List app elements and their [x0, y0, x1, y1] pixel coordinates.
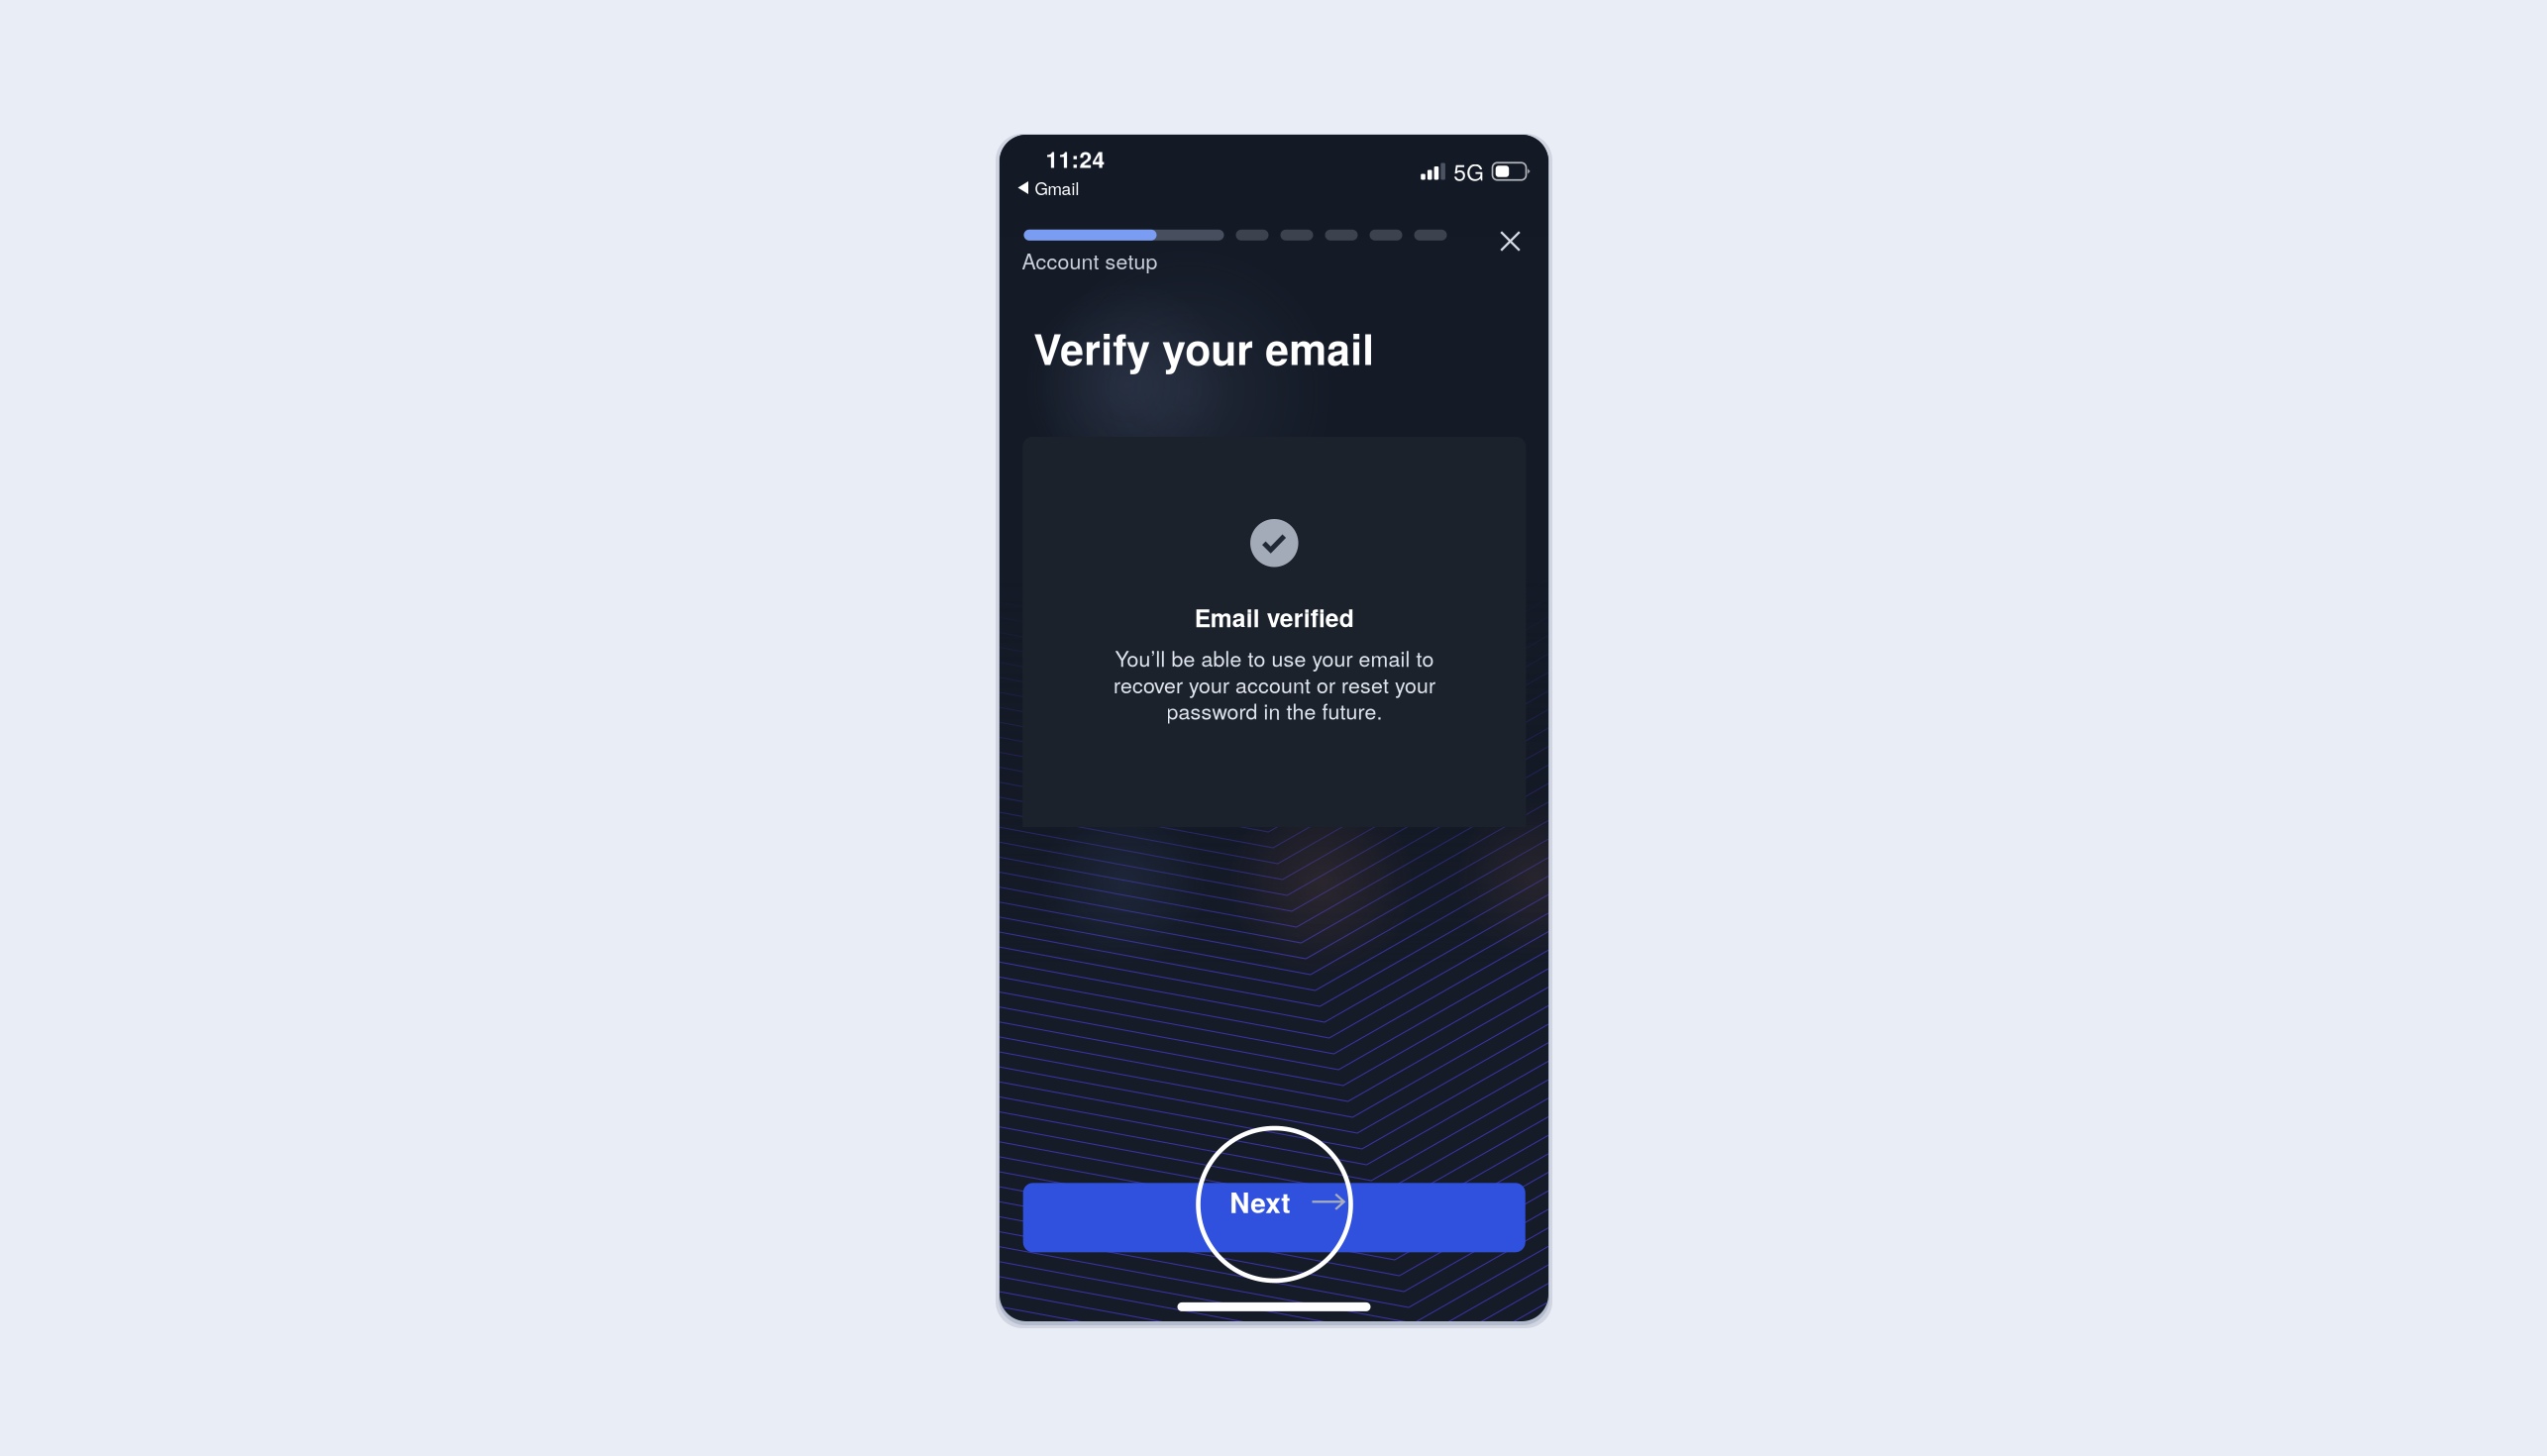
button[interactable]: Next: [1023, 1183, 1525, 1252]
staticText: Email verified: [1195, 600, 1354, 635]
staticText: Next: [1230, 1182, 1290, 1222]
staticText: You’ll be able to use your email to reco…: [1113, 645, 1435, 724]
staticText: 11:24: [1046, 143, 1105, 175]
staticText: Account setup: [1022, 245, 1158, 275]
button[interactable]: Close: [1488, 219, 1532, 263]
button[interactable]: Gmail: [1018, 180, 1079, 196]
staticText: Verify your email: [1033, 317, 1374, 378]
staticText: Gmail: [1035, 175, 1079, 200]
staticText: 5G: [1454, 155, 1484, 187]
